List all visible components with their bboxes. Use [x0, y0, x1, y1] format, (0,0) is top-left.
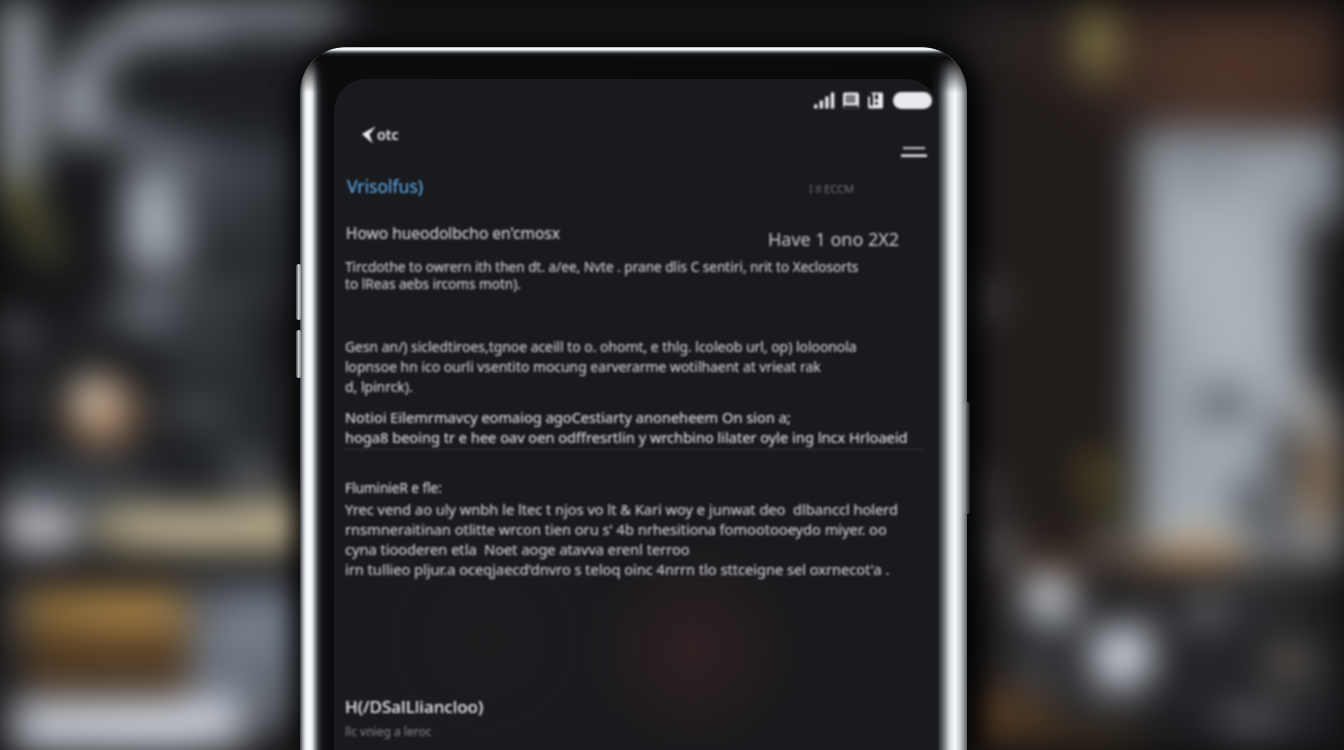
staticText: Tircdothe to owrern ith then dt. a/ee, N…	[345, 257, 859, 293]
staticText: Gesn an/) sicledtiroes,tgnoe aceill to o…	[345, 337, 857, 396]
other: Volume down	[296, 330, 301, 378]
staticText: Howo hueodolbcho en'cmosx	[346, 222, 560, 243]
staticText: Have 1 ono 2X2	[768, 227, 900, 252]
other: Back	[361, 125, 377, 144]
button[interactable]: Menu	[895, 141, 933, 163]
staticText: llc vnieg a leroc	[345, 723, 432, 739]
staticText: Vrisolfus)	[347, 174, 424, 198]
staticText: Notioi Eilemrmavcy eomaiog agoCestiarty …	[345, 407, 908, 447]
staticText: Yrec vend ao uly wnbh le ltec t njos vo …	[345, 499, 899, 579]
button[interactable]: Back	[355, 119, 405, 149]
staticText: otc	[377, 124, 399, 144]
staticText: I ll ECCM	[809, 181, 854, 196]
staticText: H(/DSalLliancloo)	[345, 695, 484, 718]
other: Volume up	[296, 264, 301, 320]
other: Power	[964, 402, 970, 514]
staticText: FluminieR e fle:	[345, 479, 442, 497]
